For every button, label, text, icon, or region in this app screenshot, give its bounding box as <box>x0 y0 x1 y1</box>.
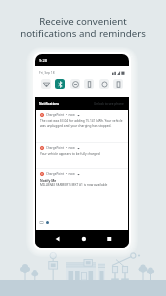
staticText: Notifications <box>39 102 60 106</box>
staticText: The cost was $3.04 for adding 15.141 kWh… <box>40 119 124 128</box>
staticText: ChargePoint • now <box>46 172 75 176</box>
staticText: Your vehicle appears to be fully charged <box>40 152 100 156</box>
button[interactable]: ChargePoint • now <box>36 143 128 168</box>
button[interactable]: ChargePoint • now <box>36 169 128 193</box>
button[interactable]: Bluetooth <box>55 79 65 89</box>
staticText: Notify Me <box>40 178 57 182</box>
staticText: Unlock to see phone <box>94 102 124 106</box>
button[interactable]: Wi-Fi <box>41 79 51 89</box>
button[interactable]: Do not disturb <box>70 79 80 89</box>
staticText: Fri, Sep 18 <box>39 71 55 75</box>
staticText: ChargePoint • now <box>46 113 75 117</box>
button[interactable]: Auto-rotate <box>99 79 109 89</box>
staticText: 9:28 <box>39 58 47 63</box>
button[interactable]: ChargePoint • now <box>36 110 128 142</box>
button[interactable]: Battery saver <box>113 79 123 89</box>
staticText: Receive convenient notifications and rem… <box>20 15 146 40</box>
staticText: ChargePoint • now <box>46 146 75 150</box>
staticText: MILLBRAE FARMER'S MKT #1 is now availabl… <box>40 183 108 187</box>
button[interactable]: Flashlight <box>84 79 94 89</box>
